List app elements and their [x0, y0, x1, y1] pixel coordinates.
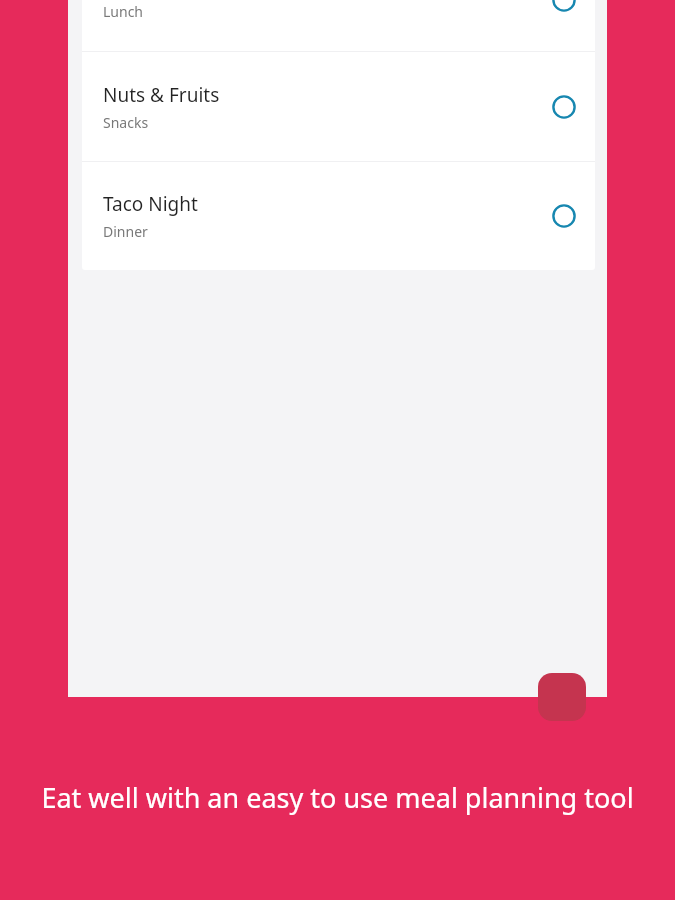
button[interactable]: Mark as eaten: [550, 202, 578, 230]
button[interactable]: Mark as eaten: [550, 0, 578, 14]
staticText: Lunch: [103, 2, 144, 21]
staticText: Taco Night: [103, 191, 198, 217]
button[interactable]: Nuts & Fruits: [82, 52, 595, 161]
button[interactable]: Mark as eaten: [550, 93, 578, 121]
staticText: Eat well with an easy to use meal planni…: [41, 779, 634, 816]
button[interactable]: Taco Night: [82, 162, 595, 270]
staticText: Snacks: [103, 113, 149, 132]
button[interactable]: Add meal: [538, 673, 586, 721]
staticText: Dinner: [103, 222, 148, 241]
button[interactable]: Lunch: [82, 0, 595, 51]
staticText: Nuts & Fruits: [103, 82, 220, 108]
